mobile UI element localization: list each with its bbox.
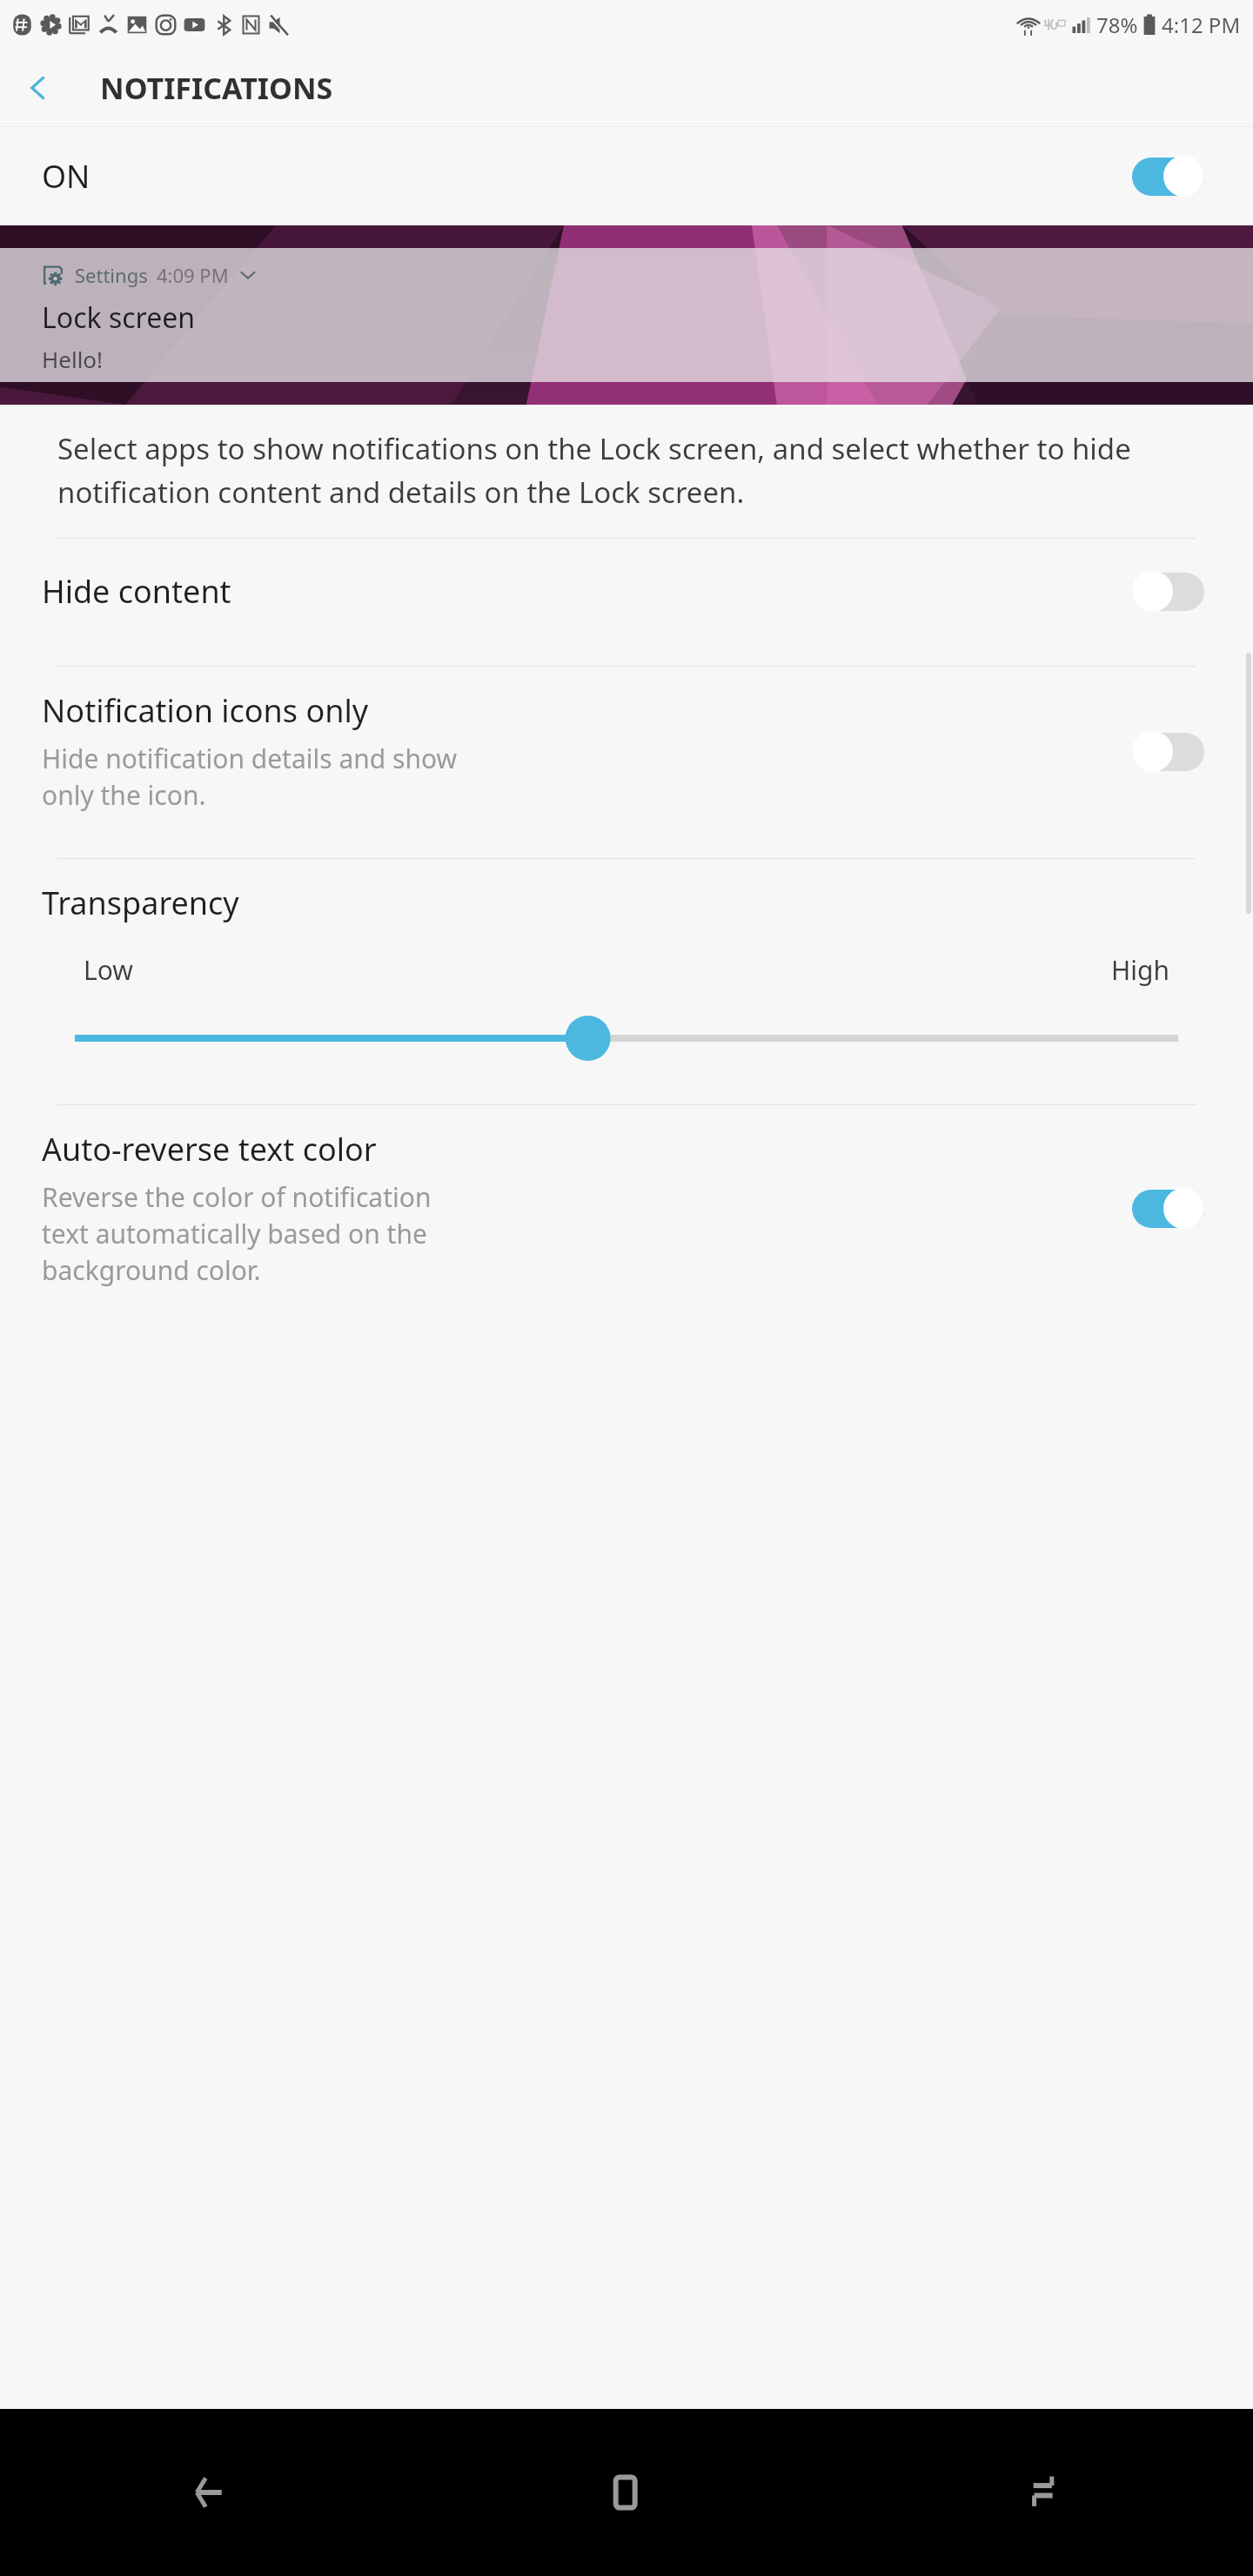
staticText: Settings	[75, 262, 148, 288]
staticText: NOTIFICATIONS	[100, 68, 333, 108]
button[interactable]: Back	[0, 2409, 418, 2576]
button[interactable]: Recents	[835, 2409, 1253, 2576]
staticText: 78%	[1096, 10, 1138, 39]
staticText: Auto-reverse text color	[42, 1128, 377, 1171]
staticText: Notification icons only	[42, 689, 369, 732]
button[interactable]: Transparency	[0, 859, 1253, 1082]
staticText: Low	[84, 952, 133, 988]
button[interactable]: Back	[0, 50, 77, 126]
staticText: Hello!	[42, 344, 104, 374]
staticText: High	[1111, 952, 1169, 988]
staticText: Reverse the color of notification text a…	[42, 1179, 432, 1288]
staticText: Select apps to show notifications on the…	[57, 429, 1196, 512]
button[interactable]: Hide content	[0, 539, 1253, 643]
button[interactable]: Settings	[0, 248, 1253, 382]
button[interactable]: Auto-reverse text color	[0, 1105, 1253, 1304]
staticText: Hide notification details and show only …	[42, 741, 458, 813]
staticText: Lock screen	[42, 299, 196, 337]
staticText: Transparency	[42, 882, 239, 924]
button[interactable]: Notification icons only	[0, 667, 1253, 835]
button[interactable]: ON	[0, 127, 1253, 225]
staticText: Hide content	[42, 570, 231, 613]
staticText: 4:09 PM	[157, 262, 229, 288]
staticText: 4:12 PM	[1162, 10, 1241, 39]
staticText: ON	[42, 155, 90, 198]
button[interactable]: Home	[418, 2409, 835, 2576]
